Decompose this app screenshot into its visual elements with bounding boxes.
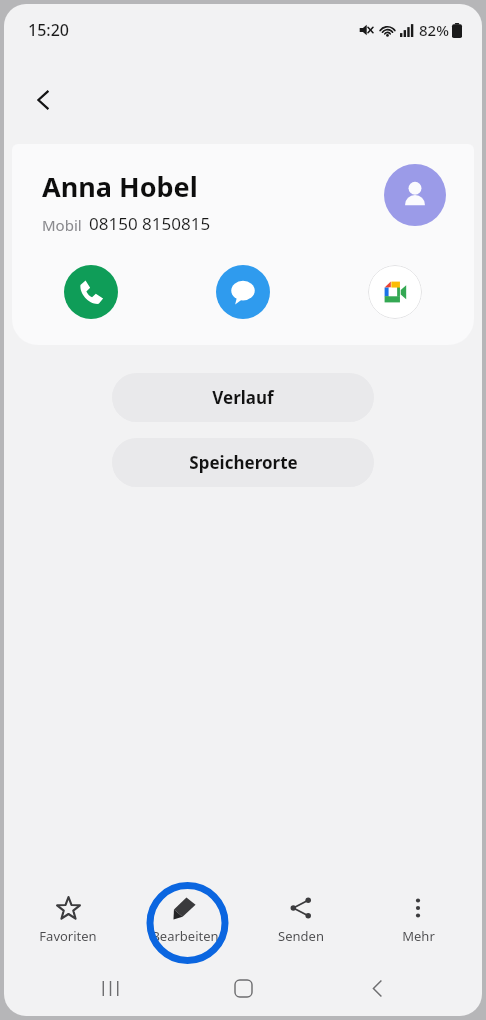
- button[interactable]: Video call with Google Meet: [368, 265, 422, 319]
- button[interactable]: Back: [349, 960, 405, 1016]
- button[interactable]: Senden: [249, 888, 353, 951]
- staticText: Favoriten: [39, 927, 97, 945]
- staticText: 08150 8150815: [89, 212, 211, 235]
- button[interactable]: Home: [215, 960, 271, 1016]
- button[interactable]: Bearbeiten: [133, 888, 237, 951]
- button[interactable]: Call: [64, 265, 118, 319]
- staticText: 82%: [419, 20, 449, 40]
- staticText: Senden: [278, 927, 324, 945]
- button[interactable]: Message: [216, 265, 270, 319]
- staticText: Verlauf: [212, 386, 274, 409]
- button[interactable]: Back: [22, 78, 66, 122]
- staticText: 15:20: [28, 19, 69, 41]
- staticText: Mobil: [42, 215, 82, 235]
- button[interactable]: Contact photo: [384, 164, 446, 226]
- staticText: Speicherorte: [189, 451, 298, 474]
- button[interactable]: Verlauf: [112, 373, 374, 422]
- staticText: Mehr: [402, 927, 435, 945]
- button[interactable]: Recents: [82, 960, 138, 1016]
- button[interactable]: Mehr: [366, 888, 470, 951]
- staticText: Anna Hobel: [42, 168, 198, 205]
- staticText: Bearbeiten: [151, 927, 219, 945]
- button[interactable]: Speicherorte: [112, 438, 374, 487]
- button[interactable]: Favoriten: [16, 888, 120, 951]
